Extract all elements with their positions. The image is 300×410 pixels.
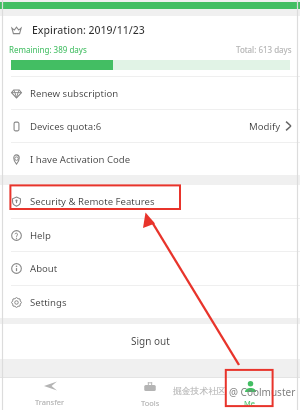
button[interactable]: Tools — [100, 377, 200, 410]
staticText: Transfer — [35, 397, 65, 407]
staticText: @ Coolmuster — [229, 385, 296, 399]
staticText: Me — [244, 398, 256, 408]
staticText: About — [30, 262, 58, 275]
button[interactable]: Transfer — [0, 377, 100, 410]
staticText: Remaining: 389 days — [9, 44, 87, 55]
button[interactable]: Security & Remote Features — [0, 185, 300, 218]
button[interactable]: I have Activation Code — [0, 143, 300, 175]
button[interactable]: About — [0, 252, 300, 285]
staticText: 掘金技术社区 — [173, 386, 226, 397]
staticText: I have Activation Code — [30, 153, 131, 166]
button[interactable]: Me — [200, 377, 300, 410]
button[interactable]: Settings — [0, 286, 300, 318]
button[interactable]: Sign out — [0, 324, 300, 359]
button[interactable]: Expiration: 2019/11/23 — [0, 16, 300, 44]
button[interactable]: Renew subscription — [0, 77, 300, 109]
staticText: Devices quota:6 — [30, 120, 102, 133]
staticText: Renew subscription — [30, 87, 119, 100]
staticText: Settings — [30, 296, 67, 309]
staticText: Tools — [141, 398, 160, 408]
other: Tools — [144, 381, 156, 392]
other: Me — [245, 381, 256, 392]
staticText: Sign out — [131, 334, 170, 348]
other: Transfer — [44, 381, 57, 391]
staticText: Security & Remote Features — [30, 195, 155, 208]
staticText: Help — [30, 229, 51, 242]
button[interactable]: Help — [0, 219, 300, 251]
staticText: Expiration: 2019/11/23 — [32, 23, 145, 37]
button[interactable]: Devices quota:6 — [0, 110, 300, 142]
staticText: Modify — [249, 120, 281, 133]
staticText: Total: 613 days — [236, 44, 292, 55]
